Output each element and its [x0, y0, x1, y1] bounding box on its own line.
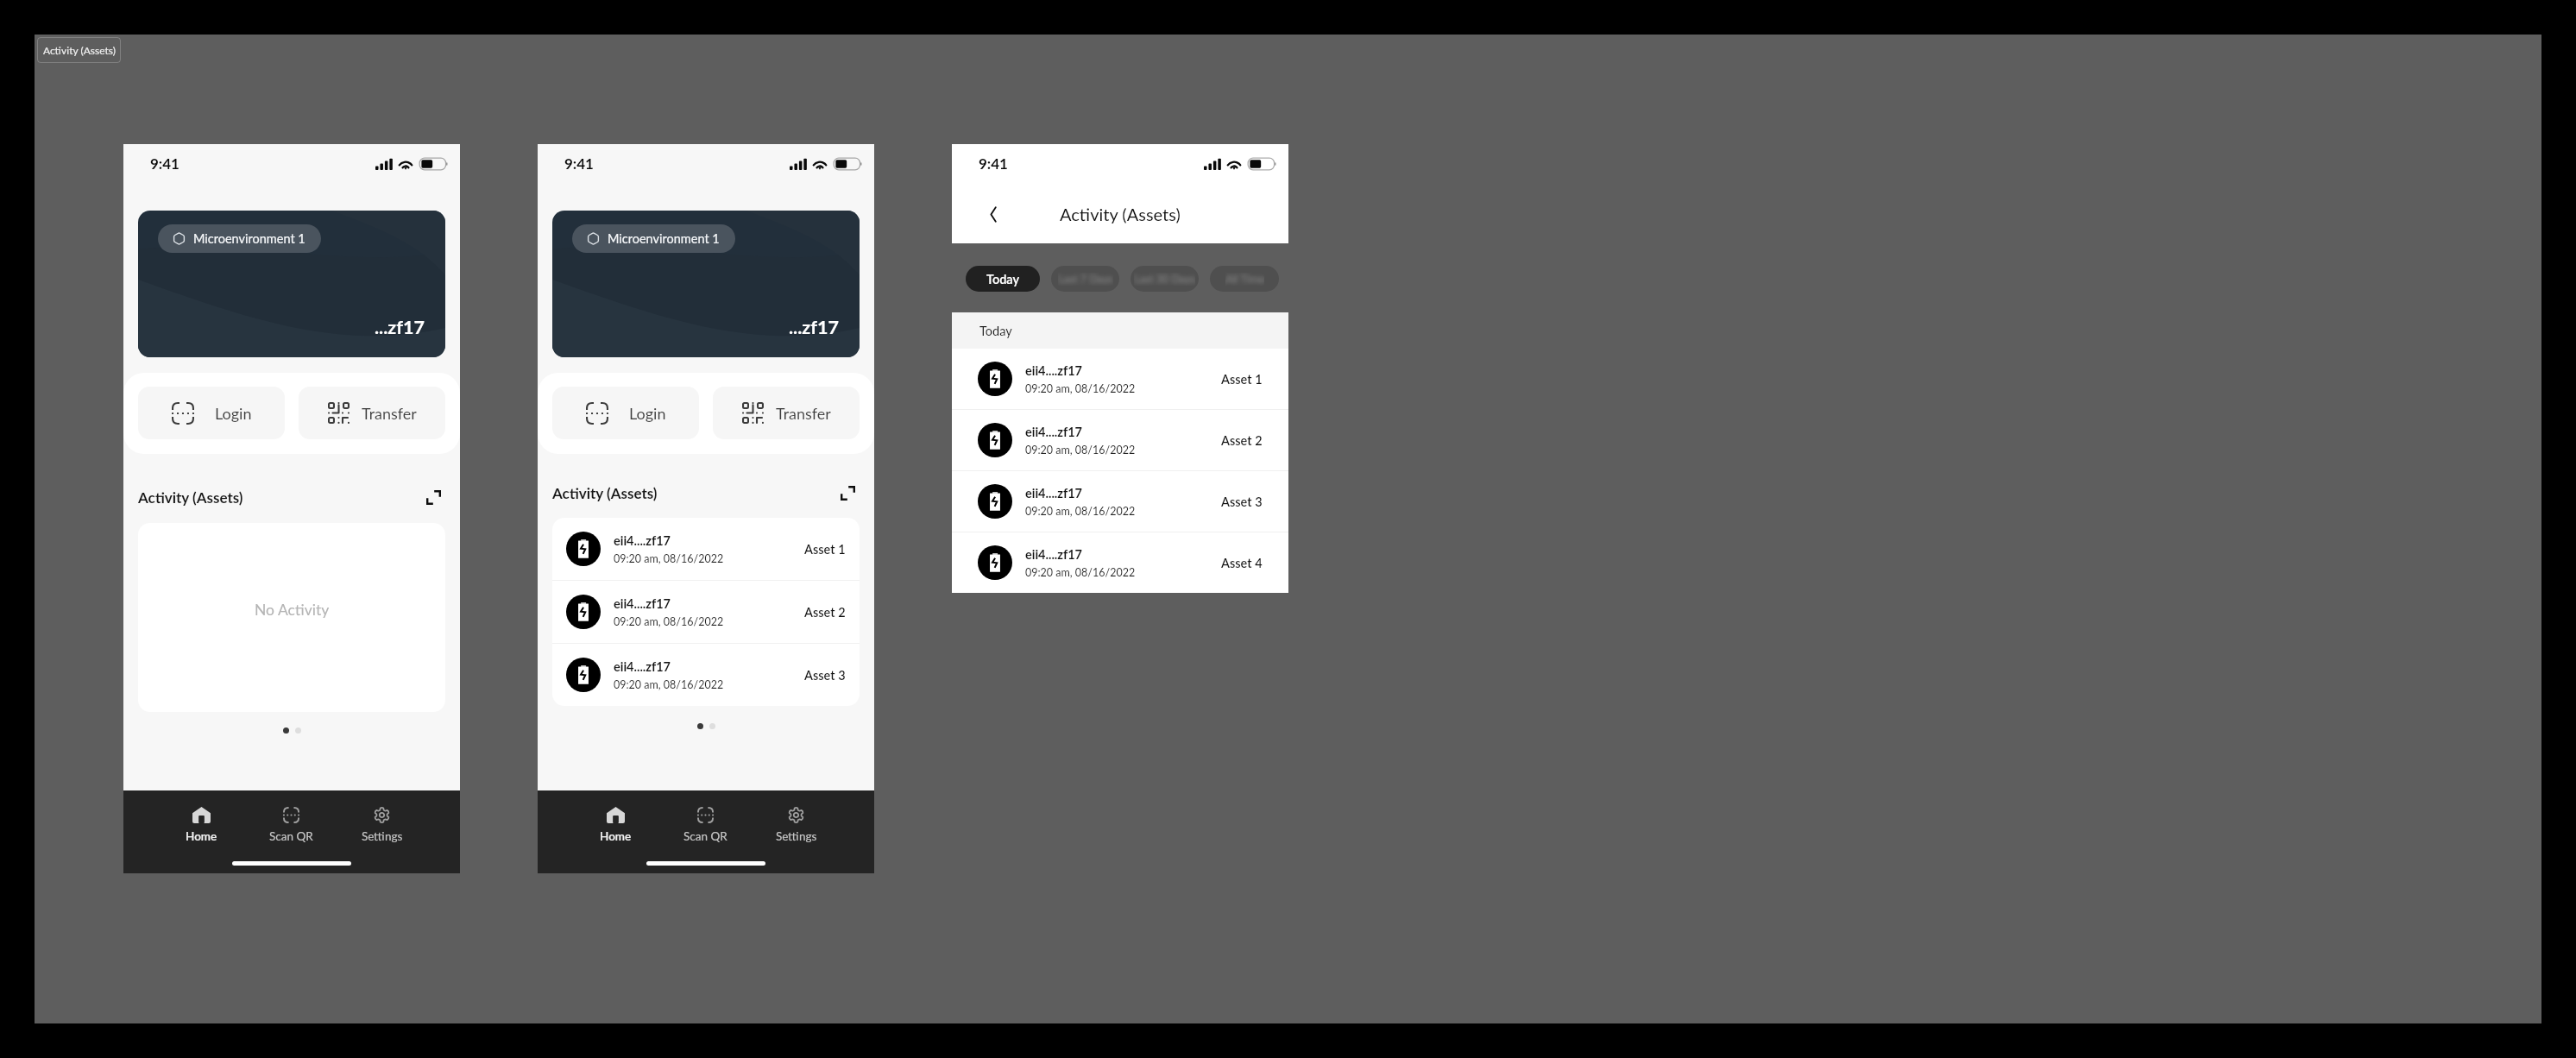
- staticText: 9:41: [150, 154, 180, 172]
- staticText: 09:20 am, 08/16/2022: [1025, 382, 1136, 395]
- staticText: ...zf17: [375, 316, 425, 338]
- staticText: eii4....zf17: [614, 533, 671, 548]
- staticText: Transfer: [362, 404, 417, 423]
- button[interactable]: Scan QR: [246, 807, 337, 843]
- button[interactable]: Login: [138, 387, 285, 439]
- staticText: Microenvironment 1: [608, 231, 720, 246]
- staticText: eii4....zf17: [1025, 425, 1082, 439]
- staticText: 09:20 am, 08/16/2022: [614, 678, 724, 691]
- button[interactable]: Transfer: [713, 387, 860, 439]
- staticText: eii4....zf17: [1025, 486, 1082, 501]
- staticText: Scan QR: [683, 829, 727, 843]
- button[interactable]: Last 7 Days: [1051, 266, 1119, 292]
- button[interactable]: Scan QR: [660, 807, 751, 843]
- staticText: Asset 3: [804, 668, 846, 683]
- button[interactable]: Back: [979, 200, 1007, 228]
- button[interactable]: Expand activity: [835, 481, 860, 505]
- staticText: Activity (Assets): [43, 44, 116, 56]
- staticText: eii4....zf17: [1025, 547, 1082, 562]
- button[interactable]: eii4....zf17: [552, 644, 860, 706]
- staticText: 9:41: [564, 154, 594, 172]
- staticText: 9:41: [979, 154, 1008, 172]
- staticText: 09:20 am, 08/16/2022: [1025, 566, 1136, 579]
- staticText: 09:20 am, 08/16/2022: [1025, 505, 1136, 518]
- button[interactable]: eii4....zf17: [952, 532, 1288, 593]
- staticText: Asset 3: [1221, 494, 1263, 509]
- button[interactable]: Today: [966, 266, 1040, 292]
- staticText: ...zf17: [789, 316, 839, 338]
- button[interactable]: Transfer: [299, 387, 445, 439]
- staticText: Microenvironment 1: [193, 231, 305, 246]
- button[interactable]: Login: [552, 387, 699, 439]
- staticText: Asset 1: [804, 542, 846, 557]
- staticText: Home: [600, 829, 632, 843]
- staticText: Activity (Assets): [552, 484, 835, 501]
- staticText: eii4....zf17: [1025, 363, 1082, 378]
- button[interactable]: eii4....zf17: [952, 349, 1288, 409]
- staticText: Login: [215, 404, 252, 423]
- button[interactable]: eii4....zf17: [952, 410, 1288, 470]
- staticText: Today: [979, 324, 1012, 338]
- staticText: eii4....zf17: [614, 596, 671, 611]
- staticText: All Time: [1225, 273, 1264, 286]
- button[interactable]: Settings: [337, 807, 427, 843]
- button[interactable]: All Time: [1210, 266, 1279, 292]
- staticText: eii4....zf17: [614, 659, 671, 674]
- button[interactable]: Settings: [751, 807, 841, 843]
- staticText: 09:20 am, 08/16/2022: [614, 615, 724, 628]
- button[interactable]: Home: [156, 807, 246, 843]
- staticText: Activity (Assets): [1060, 204, 1181, 224]
- button[interactable]: eii4....zf17: [552, 518, 860, 580]
- staticText: Settings: [776, 829, 817, 843]
- staticText: Last 7 Days: [1058, 273, 1113, 286]
- staticText: Today: [986, 272, 1019, 287]
- staticText: Transfer: [776, 404, 831, 423]
- staticText: Settings: [362, 829, 403, 843]
- staticText: Asset 4: [1221, 556, 1263, 570]
- button[interactable]: Home: [570, 807, 660, 843]
- staticText: Asset 1: [1221, 372, 1263, 387]
- staticText: Asset 2: [1221, 433, 1263, 448]
- staticText: No Activity: [255, 601, 330, 619]
- staticText: Home: [186, 829, 217, 843]
- button[interactable]: Last 30 Days: [1131, 266, 1199, 292]
- staticText: Scan QR: [269, 829, 313, 843]
- button[interactable]: eii4....zf17: [552, 581, 860, 643]
- button[interactable]: eii4....zf17: [952, 471, 1288, 532]
- button[interactable]: Expand activity: [421, 485, 445, 509]
- staticText: 09:20 am, 08/16/2022: [614, 552, 724, 565]
- staticText: Asset 2: [804, 605, 846, 620]
- staticText: 09:20 am, 08/16/2022: [1025, 444, 1136, 457]
- staticText: Last 30 Days: [1134, 273, 1195, 286]
- staticText: Login: [629, 404, 666, 423]
- staticText: Activity (Assets): [138, 488, 421, 506]
